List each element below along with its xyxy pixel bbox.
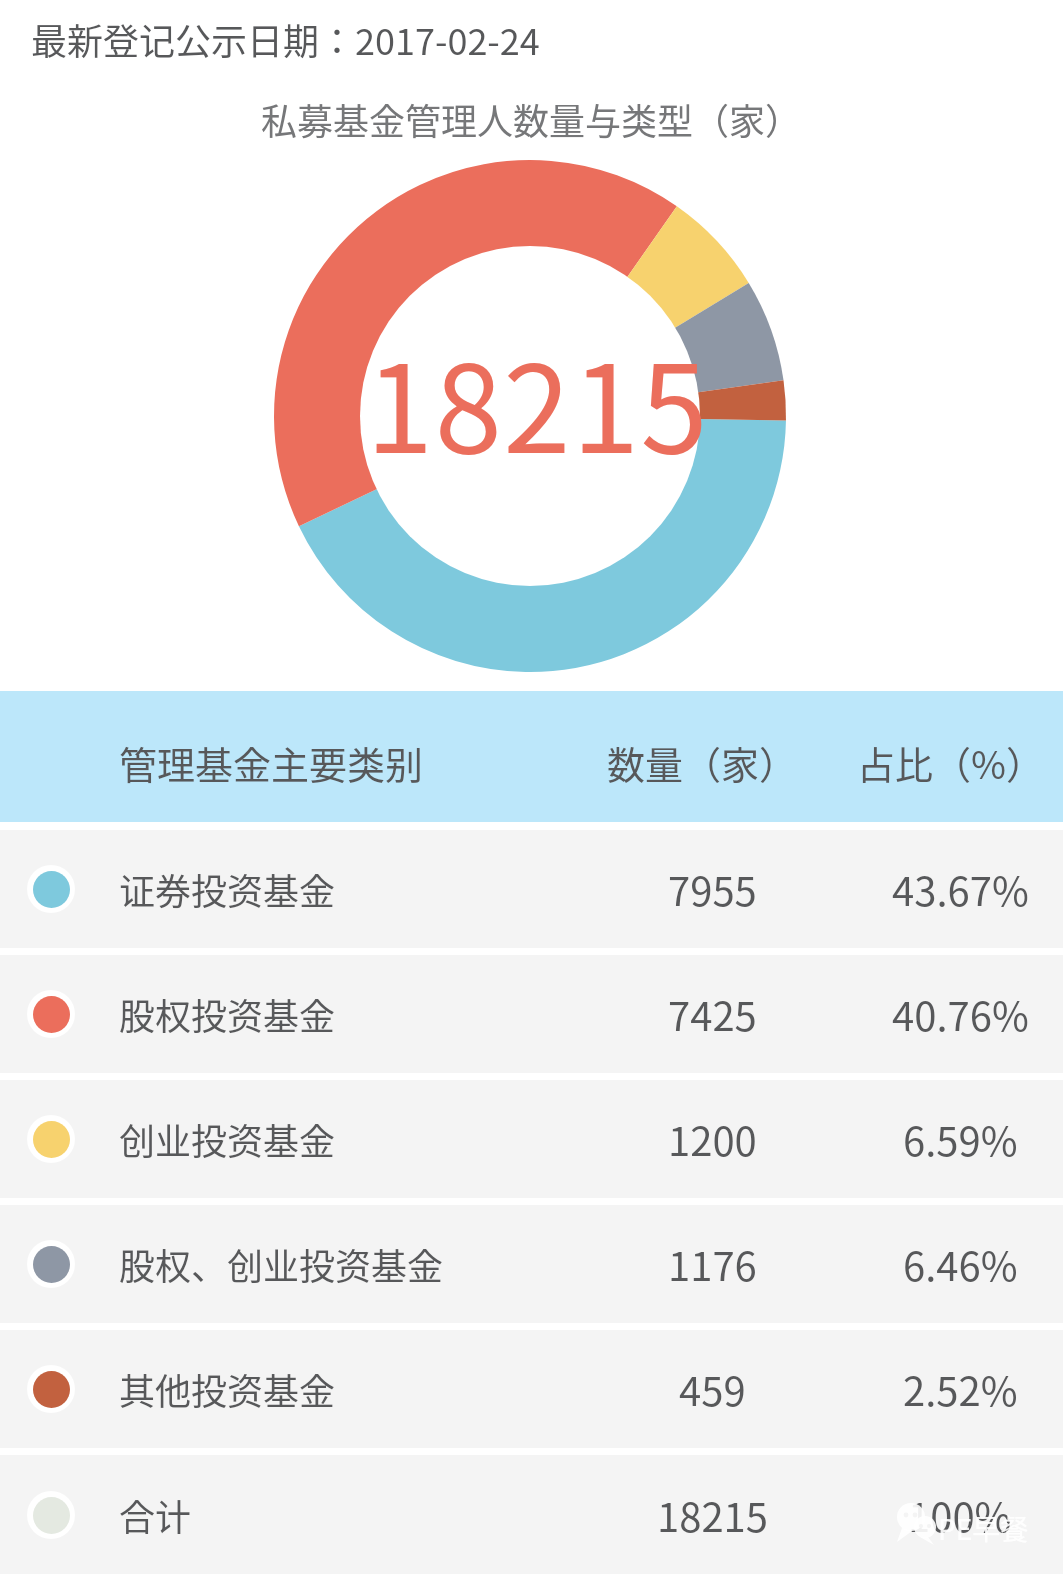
staticText: 最新登记公示日期：2017-02-24	[31, 13, 540, 65]
staticText: 40.76%	[892, 985, 1029, 1043]
button[interactable]: 创业投资基金	[0, 1080, 1063, 1198]
staticText: 6.59%	[903, 1110, 1018, 1168]
button[interactable]: 其他投资基金	[0, 1330, 1063, 1448]
staticText: 7425	[668, 985, 757, 1043]
button[interactable]: 合计	[0, 1455, 1063, 1574]
staticText: 其他投资基金	[119, 1363, 336, 1415]
staticText: 股权投资基金	[119, 988, 336, 1040]
staticText: 1200	[668, 1110, 757, 1168]
staticText: 1176	[668, 1235, 757, 1293]
staticText: 管理基金主要类别	[119, 735, 424, 790]
staticText: 数量（家）	[607, 735, 798, 790]
button[interactable]: 证券投资基金	[0, 830, 1063, 948]
staticText: 合计	[119, 1489, 192, 1541]
staticText: 2.52%	[903, 1360, 1018, 1418]
button[interactable]: 股权投资基金	[0, 955, 1063, 1073]
staticText: 证券投资基金	[119, 863, 336, 915]
staticText: 股权、创业投资基金	[119, 1238, 444, 1290]
staticText: 私募基金管理人数量与类型（家）	[261, 93, 802, 145]
button[interactable]: 股权、创业投资基金	[0, 1205, 1063, 1323]
staticText: 43.67%	[892, 860, 1029, 918]
staticText: 100%	[908, 1486, 1012, 1544]
staticText: 创业投资基金	[119, 1113, 336, 1165]
staticText: 7955	[668, 860, 757, 918]
staticText: PE早餐	[938, 1508, 1029, 1549]
staticText: 18215	[657, 1486, 768, 1544]
staticText: 6.46%	[903, 1235, 1018, 1293]
staticText: 459	[679, 1360, 746, 1418]
button[interactable]: 管理基金主要类别	[0, 691, 1063, 822]
staticText: 18215	[366, 313, 710, 488]
staticText: 占比（%）	[857, 735, 1044, 790]
